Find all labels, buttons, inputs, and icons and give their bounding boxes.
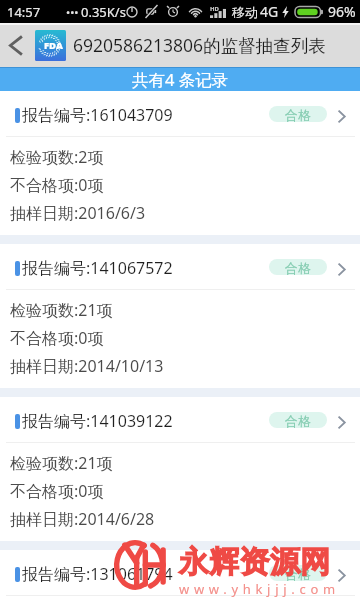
- staticText: 合格: [285, 566, 311, 581]
- staticText: 报告编号:161043709: [22, 104, 173, 126]
- staticText: 检验项数:21项: [10, 452, 113, 474]
- staticText: 报告编号:131061794: [22, 563, 173, 585]
- staticText: 报告编号:141039122: [22, 410, 173, 432]
- staticText: 抽样日期:2016/6/3: [10, 202, 146, 224]
- staticText: 不合格项:0项: [10, 174, 104, 196]
- staticText: 14:57: [7, 3, 41, 21]
- staticText: •••: [66, 5, 79, 20]
- staticText: 检验项数:2项: [10, 146, 104, 168]
- staticText: HD: [210, 5, 219, 13]
- staticText: 不合格项:0项: [10, 327, 104, 349]
- button[interactable]: 报告编号:141039122: [0, 397, 360, 541]
- staticText: 6920586213806的监督抽查列表: [73, 33, 326, 57]
- staticText: 报告编号:141067572: [22, 257, 173, 279]
- staticText: 永辉资源网: [179, 543, 330, 581]
- button[interactable]: 报告编号:141067572: [0, 244, 360, 388]
- staticText: 移动: [232, 4, 258, 20]
- staticText: 4G: [260, 2, 279, 21]
- staticText: 合格: [285, 107, 311, 122]
- staticText: 合格: [285, 413, 311, 428]
- staticText: 检验项数:21项: [10, 299, 113, 321]
- staticText: www.yhkjjj.com: [179, 580, 340, 598]
- staticText: 不合格项:0项: [10, 480, 104, 502]
- button[interactable]: 报告编号:131061794: [0, 550, 360, 600]
- staticText: FDA: [44, 39, 63, 52]
- staticText: 共有4 条记录: [132, 68, 229, 91]
- button[interactable]: Back: [0, 23, 30, 67]
- staticText: 抽样日期:2014/10/13: [10, 355, 164, 377]
- staticText: 合格: [285, 260, 311, 275]
- staticText: 96%: [328, 2, 356, 21]
- staticText: 0.35K/s: [81, 3, 126, 21]
- staticText: 抽样日期:2014/6/28: [10, 508, 155, 530]
- button[interactable]: 报告编号:161043709: [0, 91, 360, 235]
